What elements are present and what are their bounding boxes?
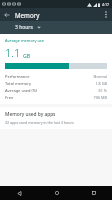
button[interactable]: Total memory	[5, 80, 107, 87]
staticText: 1.1	[5, 45, 21, 60]
button[interactable]: Memory used by apps	[0, 107, 112, 129]
staticText: Performance	[5, 74, 93, 79]
staticText: 61 %	[98, 88, 107, 93]
button[interactable]: Recent apps	[75, 186, 112, 200]
button[interactable]: Average used (%)	[5, 87, 107, 94]
staticText: Free	[5, 95, 93, 100]
button[interactable]: Free	[5, 94, 107, 101]
button[interactable]: More options	[99, 8, 112, 21]
button[interactable]: Home	[38, 186, 75, 200]
staticText: 32 apps used memory in the last 3 hours	[5, 120, 74, 125]
staticText: Average used (%)	[5, 88, 98, 93]
staticText: Memory	[15, 11, 40, 19]
button[interactable]: Navigate up	[0, 8, 13, 21]
button[interactable]: Back	[0, 186, 38, 200]
staticText: 4:17	[102, 2, 110, 7]
button[interactable]: 3 hours	[15, 24, 41, 31]
staticText: 706 MB	[93, 95, 107, 100]
staticText: 1.8 GB	[95, 81, 107, 86]
staticText: GB	[23, 52, 31, 59]
staticText: Total memory	[5, 81, 95, 86]
staticText: 3 hours	[15, 24, 33, 31]
staticText: Memory used by apps	[5, 111, 56, 118]
button[interactable]: Performance	[5, 73, 107, 80]
staticText: Normal	[93, 74, 107, 79]
staticText: Average memory use	[5, 38, 44, 43]
